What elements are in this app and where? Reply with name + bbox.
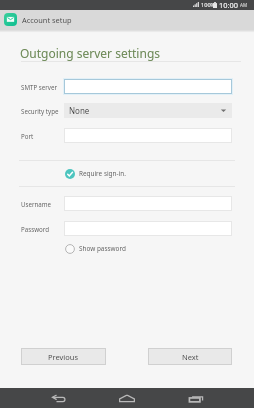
button[interactable]: Next: [148, 348, 232, 365]
staticText: None: [69, 105, 90, 116]
button[interactable]: Username: [64, 196, 232, 211]
staticText: Next: [182, 352, 199, 362]
button[interactable]: SMTP server: [64, 79, 232, 94]
button[interactable]: Require sign-in.: [65, 168, 126, 179]
staticText: Require sign-in.: [79, 169, 126, 178]
button[interactable]: Recent apps: [179, 388, 212, 408]
button[interactable]: Home: [110, 388, 143, 408]
button[interactable]: Email app icon: [4, 13, 17, 26]
button[interactable]: None: [64, 103, 232, 118]
staticText: Port: [21, 132, 34, 140]
button[interactable]: Previous: [21, 348, 106, 365]
staticText: Outgoing server settings: [20, 45, 161, 61]
button[interactable]: Show password: [65, 243, 126, 254]
staticText: Username: [21, 200, 52, 208]
staticText: Previous: [48, 352, 79, 362]
staticText: Account setup: [22, 15, 72, 25]
button[interactable]: Port: [64, 128, 232, 143]
staticText: Show password: [79, 244, 126, 253]
button[interactable]: Back: [42, 388, 75, 408]
button[interactable]: Password: [64, 221, 232, 236]
staticText: 100%: [201, 1, 216, 9]
staticText: SMTP server: [21, 83, 57, 91]
staticText: 10:00: [219, 0, 238, 10]
staticText: Security type: [21, 107, 59, 115]
staticText: AM: [240, 2, 248, 8]
staticText: Password: [21, 225, 49, 233]
